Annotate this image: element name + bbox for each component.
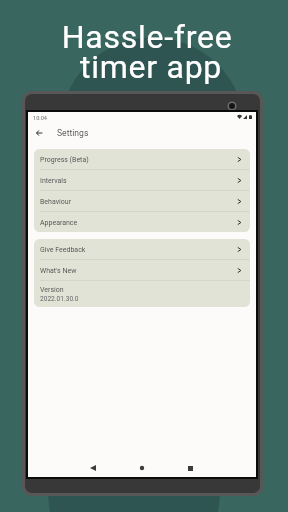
button[interactable]: What's New [34, 260, 250, 280]
staticText: Intervals [40, 177, 67, 185]
staticText: Give Feedback [40, 246, 86, 254]
staticText: 10:04 [33, 115, 47, 122]
staticText: Behaviour [40, 198, 72, 206]
staticText: timer app [7, 48, 288, 86]
staticText: Settings [57, 128, 89, 138]
button[interactable]: Progress (Beta) [34, 149, 250, 169]
staticText: 2022.01.30.0 [40, 295, 79, 303]
button[interactable]: Give Feedback [34, 239, 250, 259]
staticText: Version [40, 286, 64, 294]
button[interactable]: Appearance [34, 212, 250, 232]
button[interactable]: Intervals [34, 170, 250, 190]
button[interactable]: Back [30, 124, 48, 142]
staticText: Hassle-free [3, 18, 288, 56]
button[interactable]: Recent apps [179, 457, 201, 479]
button[interactable]: Back [82, 457, 104, 479]
staticText: Progress (Beta) [40, 156, 89, 164]
button[interactable]: Behaviour [34, 191, 250, 211]
button[interactable]: Home [131, 457, 153, 479]
button[interactable]: Version [34, 281, 250, 307]
staticText: Appearance [40, 219, 78, 227]
staticText: What's New [40, 267, 77, 275]
